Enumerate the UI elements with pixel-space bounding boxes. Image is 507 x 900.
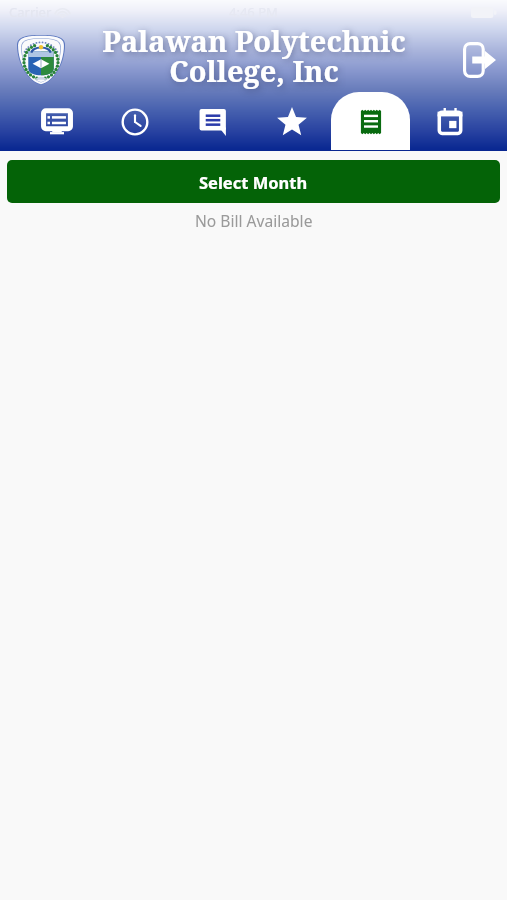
staticText: Palawan Polytechnic College, Inc: [102, 21, 406, 90]
button[interactable]: Dashboard: [18, 93, 96, 151]
staticText: 4:46 PM: [229, 3, 278, 21]
button[interactable]: Logout: [462, 41, 496, 78]
button[interactable]: Billing: [331, 93, 410, 151]
button[interactable]: Schedule: [96, 93, 174, 151]
button[interactable]: Grades: [252, 93, 331, 151]
staticText: Carrier: [9, 3, 52, 21]
staticText: Select Month: [199, 171, 308, 193]
button[interactable]: Calendar: [410, 93, 489, 151]
button[interactable]: Select Month: [7, 160, 500, 203]
button[interactable]: Messages: [174, 93, 252, 151]
staticText: No Bill Available: [195, 210, 313, 231]
